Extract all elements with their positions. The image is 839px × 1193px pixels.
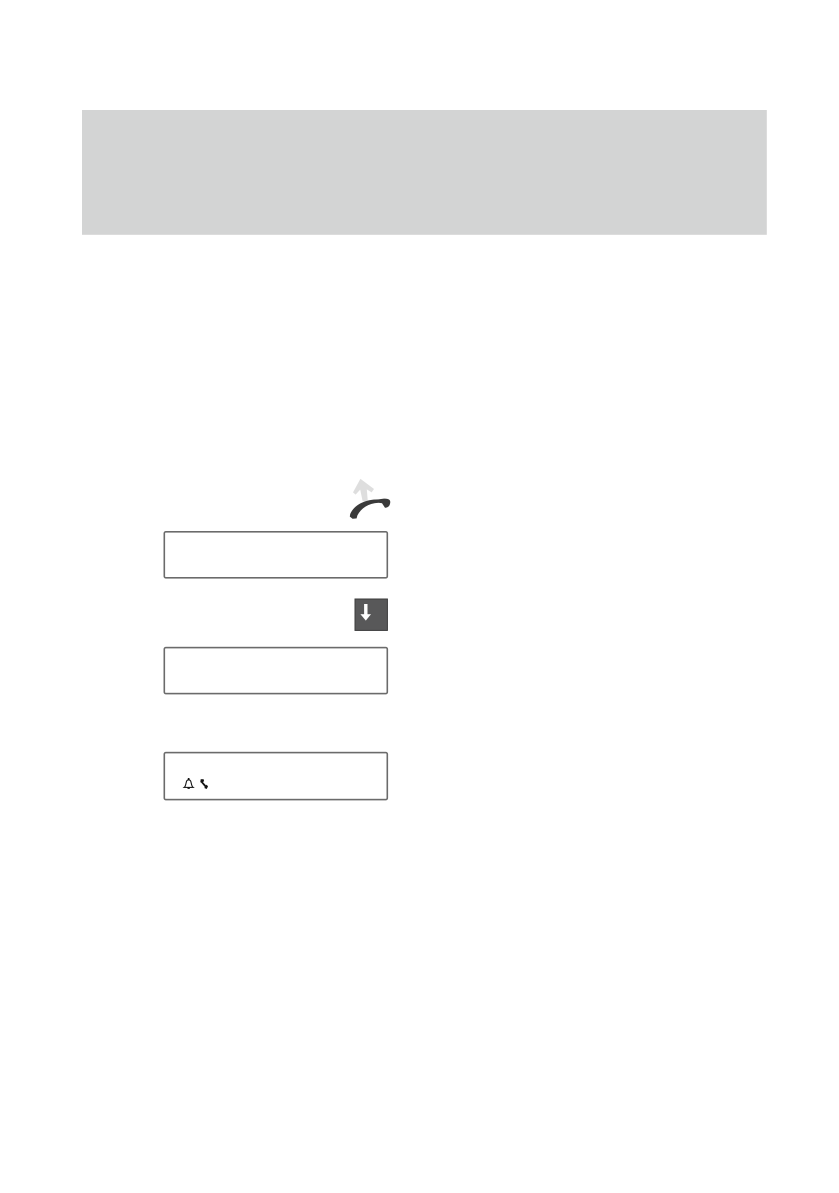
button[interactable]: Download: [355, 599, 387, 630]
button[interactable]: Ring and call: [164, 753, 387, 800]
button[interactable]: Outgoing call field: [164, 532, 387, 578]
button[interactable]: Incoming call field: [164, 648, 387, 694]
